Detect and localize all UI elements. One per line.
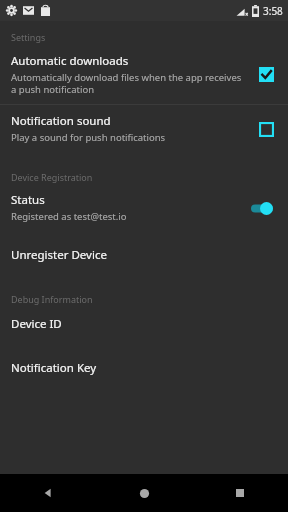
staticText: Registered as test@test.io (11, 210, 127, 223)
button[interactable]: Automatic downloads (0, 46, 288, 104)
button[interactable]: Status (0, 186, 288, 233)
staticText: Notification Key (11, 360, 97, 376)
button[interactable]: Device ID (0, 308, 288, 346)
staticText: Status (11, 192, 45, 208)
staticText: Debug Information (11, 293, 93, 305)
button[interactable]: Unregister Device (0, 233, 288, 277)
staticText: Automatic downloads (11, 53, 129, 69)
button[interactable]: Unchecked (255, 118, 277, 140)
staticText: Settings (11, 31, 46, 43)
button[interactable]: Back (0, 474, 96, 512)
staticText: Device ID (11, 316, 62, 332)
button[interactable]: Checked (255, 63, 277, 85)
staticText: Play a sound for push notifications (11, 131, 166, 144)
button[interactable]: Registration status toggle (247, 198, 277, 218)
button[interactable]: Notification sound (0, 105, 288, 154)
staticText: Device Registration (11, 171, 93, 183)
button[interactable]: Recent apps (192, 474, 288, 512)
button[interactable]: Notification Key (0, 346, 288, 390)
staticText: Automatically download files when the ap… (11, 71, 242, 95)
button[interactable]: Home (96, 474, 192, 512)
staticText: 3:58 (263, 4, 283, 18)
staticText: Unregister Device (11, 247, 107, 263)
staticText: Notification sound (11, 113, 111, 129)
